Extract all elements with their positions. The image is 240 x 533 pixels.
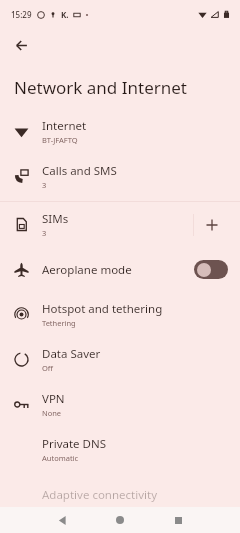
staticText: 3	[42, 228, 47, 238]
staticText: K.	[61, 9, 69, 20]
button[interactable]: Back	[6, 30, 36, 60]
staticText: Automatic	[42, 453, 79, 463]
button[interactable]: Adaptive connectivity	[0, 472, 240, 517]
button[interactable]: Back	[52, 510, 72, 530]
button[interactable]: Internet	[0, 109, 240, 154]
staticText: Tethering	[42, 318, 76, 328]
staticText: Private DNS	[42, 436, 107, 452]
button[interactable]: Aeroplane mode	[0, 247, 240, 292]
staticText: VPN	[42, 391, 65, 407]
button[interactable]: Private DNS	[0, 427, 240, 472]
button[interactable]: VPN	[0, 382, 240, 427]
staticText: None	[42, 408, 62, 418]
staticText: Off	[42, 363, 54, 373]
staticText: Adaptive connectivity	[42, 487, 158, 503]
staticText: Data Saver	[42, 346, 101, 362]
staticText: Network and Internet	[14, 76, 187, 99]
button[interactable]: Data Saver	[0, 337, 240, 382]
button[interactable]: Recents	[168, 510, 188, 530]
button[interactable]: Hotspot and tethering	[0, 292, 240, 337]
button[interactable]: Add SIM	[194, 207, 230, 243]
staticText: Hotspot and tethering	[42, 301, 163, 317]
staticText: 3	[42, 180, 47, 190]
staticText: Calls and SMS	[42, 163, 117, 179]
button[interactable]: SIMs	[14, 211, 193, 238]
button[interactable]: Home	[110, 510, 130, 530]
staticText: Aeroplane mode	[42, 262, 194, 278]
staticText: Internet	[42, 118, 87, 134]
staticText: SIMs	[42, 211, 69, 227]
staticText: 15:29	[11, 9, 32, 20]
button[interactable]: Calls and SMS	[0, 154, 240, 199]
staticText: BT-JFAFTQ	[42, 135, 78, 145]
